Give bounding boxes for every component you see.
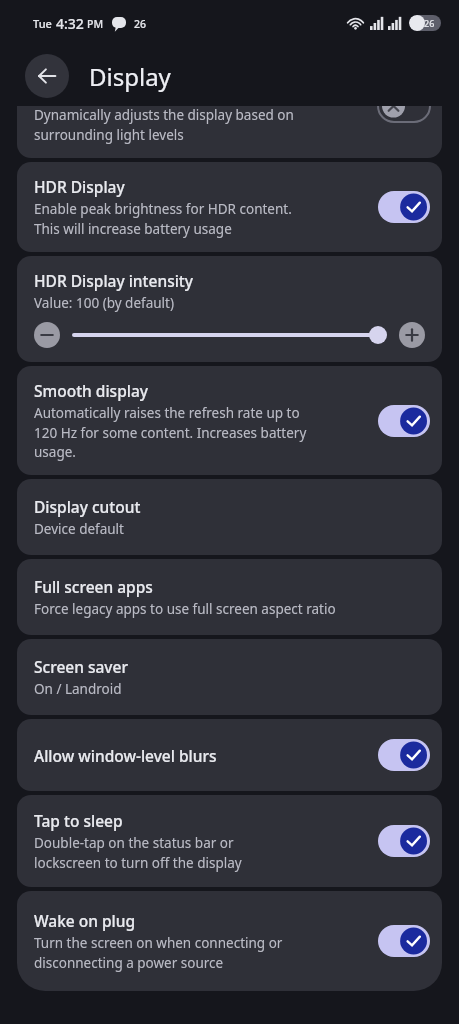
staticText: HDR Display	[34, 176, 125, 197]
staticText: On / Landroid	[34, 680, 122, 698]
button[interactable]: Back	[25, 54, 69, 98]
staticText: Full screen apps	[34, 576, 153, 597]
staticText: Value: 100 (by default)	[34, 294, 175, 312]
button[interactable]: Display cutout	[17, 479, 442, 555]
staticText: Smooth display	[34, 380, 149, 401]
staticText: 26	[424, 17, 435, 29]
staticText: HDR Display intensity	[34, 270, 193, 291]
button[interactable]: HDR Display	[17, 162, 442, 252]
button[interactable]: Smooth display	[17, 366, 442, 475]
staticText: Dynamically adjusts the display based on…	[34, 106, 294, 144]
staticText: Allow window-level blurs	[34, 745, 217, 766]
staticText: Screen saver	[34, 656, 128, 677]
button[interactable]: Wake on plug	[17, 891, 442, 991]
staticText: Device default	[34, 520, 124, 538]
button[interactable]: Screen saver	[17, 639, 442, 715]
button[interactable]: Full screen apps	[17, 559, 442, 635]
button[interactable]	[74, 323, 387, 347]
staticText: Wake on plug	[34, 910, 136, 931]
staticText: 4:32	[56, 14, 84, 33]
staticText: PM	[87, 17, 104, 31]
staticText: Automatically raises the refresh rate up…	[34, 404, 307, 461]
staticText: 26	[134, 17, 147, 31]
button[interactable]: Dynamically adjusts the display based on…	[17, 106, 442, 158]
staticText: Enable peak brightness for HDR content. …	[34, 200, 292, 238]
button[interactable]: Allow window-level blurs	[17, 719, 442, 791]
staticText: Double-tap on the status bar or lockscre…	[34, 834, 242, 872]
button[interactable]: Increase	[399, 322, 425, 348]
staticText: Force legacy apps to use full screen asp…	[34, 600, 336, 618]
button[interactable]: HDR Display intensity	[17, 256, 442, 362]
staticText: Display cutout	[34, 496, 141, 517]
button[interactable]: Decrease	[34, 322, 60, 348]
staticText: Tap to sleep	[34, 810, 123, 831]
staticText: Turn the screen on when connecting or di…	[34, 934, 283, 972]
staticText: Display	[89, 60, 171, 93]
staticText: Tue	[33, 16, 52, 31]
button[interactable]: Tap to sleep	[17, 795, 442, 887]
